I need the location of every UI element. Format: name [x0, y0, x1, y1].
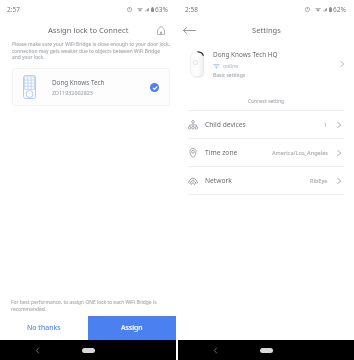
staticText: Settings	[252, 25, 281, 35]
staticText: ZD11932002823	[52, 89, 93, 96]
staticText: Child devices	[205, 120, 246, 129]
staticText: Basic settings	[213, 72, 246, 79]
staticText: America/Los_Angeles	[272, 149, 328, 157]
button[interactable]: Time zone	[178, 139, 354, 166]
staticText: RibEye	[310, 177, 328, 185]
button[interactable]: Back	[31, 344, 43, 356]
button[interactable]: No thanks	[0, 316, 88, 340]
staticText: Network	[205, 176, 232, 185]
button[interactable]: Back	[181, 22, 197, 38]
staticText: 63%	[155, 5, 168, 14]
staticText: online	[223, 62, 239, 69]
staticText: Dong Knows Tech	[52, 78, 105, 87]
staticText: 1	[324, 121, 328, 129]
button[interactable]: Home	[82, 348, 95, 353]
button[interactable]: Dong Knows Tech	[12, 68, 170, 106]
staticText: For best performance, to assign ONE lock…	[11, 299, 166, 312]
staticText: Time zone	[205, 148, 238, 157]
button[interactable]: Home	[154, 23, 168, 37]
button[interactable]: Dong Knows Tech HQ	[178, 45, 354, 83]
staticText: Assign	[121, 323, 143, 333]
button[interactable]: Home	[260, 348, 273, 353]
staticText: 2:58	[185, 5, 198, 14]
button[interactable]: Assign	[88, 316, 176, 340]
staticText: No thanks	[27, 323, 61, 333]
staticText: Dong Knows Tech HQ	[213, 50, 278, 59]
staticText: Connect setting	[178, 98, 354, 105]
button[interactable]: Child devices	[178, 111, 354, 138]
staticText: Assign lock to Connect	[48, 25, 129, 35]
button[interactable]: Network	[178, 167, 354, 194]
staticText: Please make sure your WiFi Bridge is clo…	[12, 41, 170, 60]
button[interactable]: Back	[209, 344, 221, 356]
staticText: 2:57	[7, 5, 20, 14]
staticText: 62%	[333, 5, 346, 14]
